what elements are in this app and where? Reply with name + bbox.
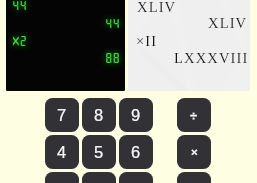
staticText: ×II — [136, 33, 158, 49]
staticText: LXXXVIII — [174, 50, 249, 66]
button[interactable]: 9 — [119, 98, 153, 132]
staticText: XLIV — [208, 15, 248, 31]
staticText: 9 — [131, 106, 141, 124]
button[interactable]: 1 — [45, 172, 79, 183]
button[interactable]: 6 — [119, 135, 153, 169]
staticText: 8 — [94, 106, 104, 124]
button[interactable]: 2 — [82, 172, 116, 183]
button[interactable]: 4 — [45, 135, 79, 169]
button[interactable]: × — [177, 135, 211, 169]
button[interactable]: 7 — [45, 98, 79, 132]
staticText: 44 — [6, 18, 120, 32]
staticText: 7 — [57, 106, 67, 124]
staticText: XLIV — [137, 0, 177, 15]
staticText: 88 — [6, 52, 120, 66]
staticText: 6 — [131, 143, 141, 161]
staticText: × — [191, 146, 198, 159]
button[interactable]: − — [177, 172, 211, 183]
button[interactable]: 5 — [82, 135, 116, 169]
button[interactable]: 3 — [119, 172, 153, 183]
staticText: 5 — [94, 143, 104, 161]
staticText: ÷ — [190, 108, 198, 123]
button[interactable]: 8 — [82, 98, 116, 132]
button[interactable]: ÷ — [177, 98, 211, 132]
staticText: x2 — [12, 35, 72, 49]
staticText: 4 — [57, 143, 67, 161]
staticText: 44 — [12, 0, 72, 14]
